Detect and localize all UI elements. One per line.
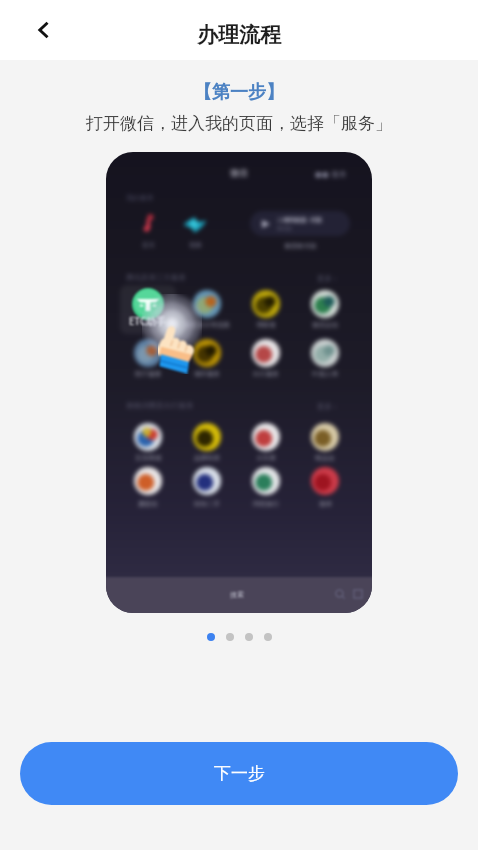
staticText: 更多 › [317,273,337,283]
button[interactable]: 二维码收款 ·付款 [250,211,350,236]
button[interactable]: App icon [252,467,280,495]
button[interactable]: 下一步 [20,742,458,805]
button[interactable]: App icon [311,290,339,318]
button[interactable]: App icon [134,423,162,451]
staticText: 音乐 [142,241,155,249]
staticText: 微信 [230,167,248,178]
button[interactable]: App icon [311,467,339,495]
button[interactable]: Page 2 [226,633,234,641]
staticText: 转转二手 [194,500,220,508]
staticText: 腾讯及第三方服务 [126,273,186,282]
staticText: 微保 [319,500,332,508]
staticText: 城市服务 [194,370,220,378]
button[interactable]: App icon [252,423,280,451]
button[interactable]: Page 4 [264,633,272,641]
staticText: 微信收付款 [284,242,317,250]
button[interactable]: App icon [311,423,339,451]
staticText: 蘑菇街 [138,500,158,508]
button[interactable]: App icon [252,339,280,367]
staticText: 中国人寿 [312,370,338,378]
staticText: 同程旅行 [253,500,279,508]
button[interactable]: Back [26,12,62,48]
button[interactable]: Page 3 [245,633,253,641]
staticText: 更多 › [317,401,337,411]
staticText: 医疗健康 [135,370,161,378]
staticText: 二维码收款 ·付款 [277,216,323,224]
staticText: 购物消费及出行服务 [126,401,194,410]
staticText: ETC助手 [129,314,167,328]
button[interactable]: App icon [193,339,221,367]
staticText: 【第一步】 [194,81,284,104]
staticText: 微信运动 [312,321,338,329]
button[interactable]: App icon [311,339,339,367]
staticText: 理财通 [256,321,276,329]
button[interactable]: ETC [132,288,164,320]
staticText: 办理流程 [197,22,281,48]
button[interactable]: App icon [134,467,162,495]
staticText: 我的服务 [126,193,154,202]
staticText: 打开微信，进入我的页面，选择「服务」 [86,113,392,134]
button[interactable]: App icon [193,423,221,451]
staticText: 微信支付有优惠 [184,321,230,329]
button[interactable]: App icon [252,290,280,318]
staticText: 品牌特卖 [194,454,220,462]
staticText: 视频 [189,241,202,249]
staticText: 搜索 [230,590,244,599]
staticText: 下一步 [214,763,265,784]
staticText: 火车票 [256,454,276,462]
staticText: ●● 服务 [315,168,348,179]
button[interactable]: App icon [193,290,221,318]
button[interactable]: App icon [193,467,221,495]
staticText: 京东商城 [135,454,161,462]
button[interactable]: Page 1 [207,633,215,641]
staticText: 唯品会 [315,454,335,462]
staticText: 出行服务 [253,370,279,378]
button[interactable]: App icon [134,339,162,367]
